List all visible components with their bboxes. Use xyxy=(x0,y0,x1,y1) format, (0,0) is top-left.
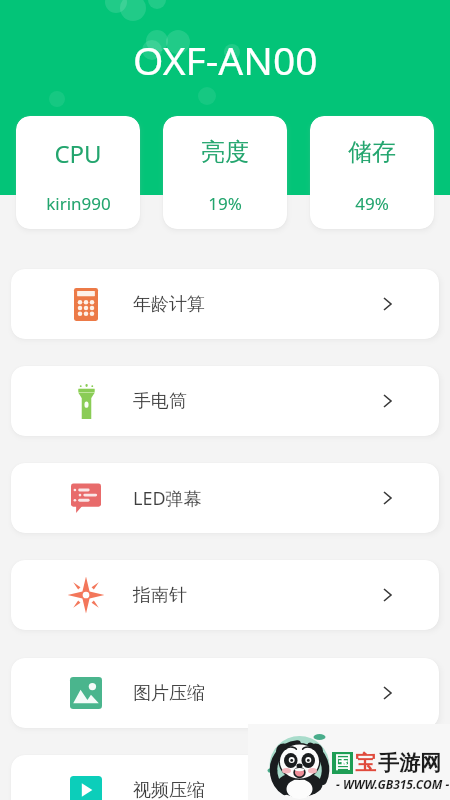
button[interactable]: LED弹幕 xyxy=(11,463,439,533)
staticText: 19% xyxy=(208,192,242,215)
staticText: 视频压缩 xyxy=(133,779,205,800)
button[interactable]: CPU xyxy=(16,116,140,229)
staticText: 亮度 xyxy=(201,137,249,167)
staticText: kirin990 xyxy=(46,192,111,215)
button[interactable]: 手电筒 xyxy=(11,366,439,436)
staticText: 49% xyxy=(355,192,389,215)
staticText: OXF-AN00 xyxy=(133,33,318,86)
button[interactable]: 图片压缩 xyxy=(11,658,439,728)
staticText: CPU xyxy=(54,137,102,170)
staticText: 手游网 xyxy=(378,750,441,776)
staticText: - WWW.GB315.COM - xyxy=(336,776,450,792)
staticText: 储存 xyxy=(348,137,396,167)
button[interactable]: 视频压缩 xyxy=(11,755,439,800)
staticText: 指南针 xyxy=(133,584,187,607)
button[interactable]: 年龄计算 xyxy=(11,269,439,339)
button[interactable]: 亮度 xyxy=(163,116,287,229)
staticText: 手电筒 xyxy=(133,390,187,413)
button[interactable]: 指南针 xyxy=(11,560,439,630)
staticText: 年龄计算 xyxy=(133,293,205,316)
staticText: 宝 xyxy=(355,750,376,776)
staticText: LED弹幕 xyxy=(133,486,202,511)
staticText: 国 xyxy=(335,753,351,773)
staticText: 图片压缩 xyxy=(133,682,205,705)
button[interactable]: 储存 xyxy=(310,116,434,229)
